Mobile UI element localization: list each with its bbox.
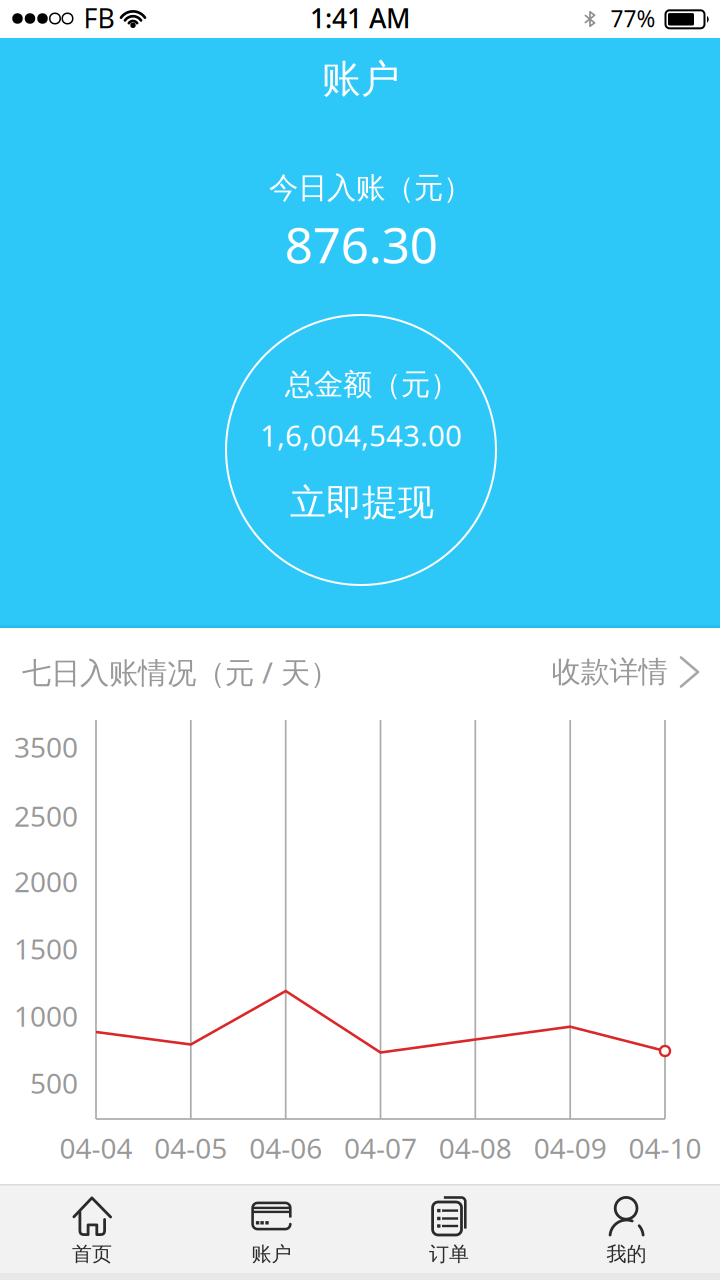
staticText: 立即提现: [290, 480, 434, 525]
staticText: 1500: [14, 930, 78, 967]
staticText: 04-07: [344, 1129, 417, 1167]
staticText: 首页: [72, 1242, 112, 1266]
staticText: 2500: [14, 797, 78, 835]
staticText: 七日入账情况（元 / 天）: [22, 652, 339, 691]
staticText: 04-09: [534, 1129, 607, 1167]
staticText: 账户: [322, 55, 400, 103]
staticText: 订单: [429, 1242, 469, 1266]
staticText: 04-08: [439, 1129, 512, 1167]
button[interactable]: 我的: [540, 1184, 720, 1280]
staticText: 04-05: [154, 1129, 227, 1167]
staticText: FB: [83, 0, 114, 36]
staticText: 04-10: [628, 1129, 701, 1167]
staticText: 我的: [607, 1242, 647, 1266]
staticText: 500: [30, 1064, 78, 1102]
staticText: 1:41 AM: [310, 0, 410, 36]
button[interactable]: 订单: [360, 1184, 540, 1280]
staticText: 收款详情: [551, 654, 667, 690]
staticText: 今日入账（元）: [269, 170, 472, 206]
staticText: 总金额（元）: [285, 366, 459, 402]
button[interactable]: 账户: [180, 1184, 360, 1280]
staticText: 876.30: [284, 211, 437, 277]
staticText: 2000: [14, 863, 78, 900]
staticText: 1,6,004,543.00: [260, 415, 462, 454]
staticText: 账户: [251, 1242, 291, 1266]
staticText: 04-06: [249, 1129, 322, 1167]
button[interactable]: 首页: [0, 1184, 180, 1280]
staticText: 3500: [14, 728, 78, 766]
button[interactable]: 总金额（元）: [226, 315, 496, 585]
staticText: 77%: [610, 3, 655, 33]
staticText: 04-04: [59, 1129, 132, 1167]
button[interactable]: 收款详情: [551, 654, 700, 690]
staticText: 1000: [14, 997, 78, 1035]
